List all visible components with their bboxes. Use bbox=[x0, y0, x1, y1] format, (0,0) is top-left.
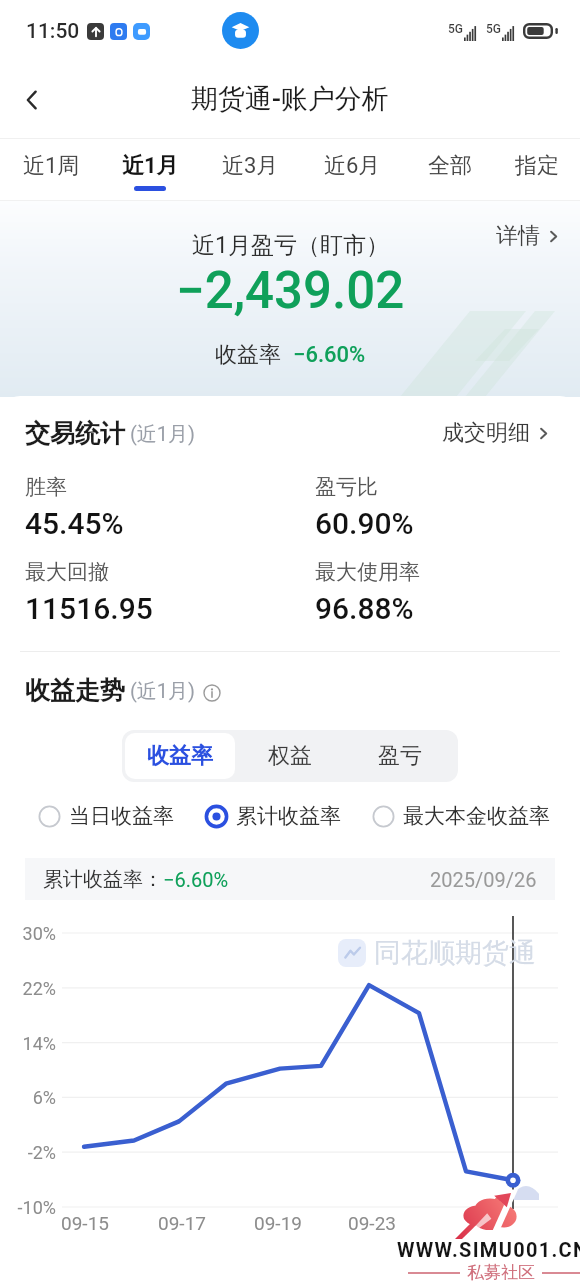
staticText: 5G bbox=[486, 22, 501, 36]
button[interactable]: 成交明细 bbox=[442, 419, 552, 449]
staticText: 09-19 bbox=[246, 1212, 310, 1234]
staticText: 私募社区 bbox=[467, 1262, 535, 1282]
staticText: 09-23 bbox=[340, 1212, 404, 1234]
staticText: 全部 bbox=[428, 152, 472, 180]
staticText: 近1月 bbox=[122, 152, 179, 180]
staticText: (近1月) bbox=[130, 422, 196, 447]
button[interactable]: 累计收益率 bbox=[205, 803, 341, 829]
staticText: 最大使用率 bbox=[315, 559, 420, 585]
staticText: 最大回撤 bbox=[25, 559, 109, 585]
button[interactable]: 最大本金收益率 bbox=[372, 803, 550, 829]
staticText: 指定 bbox=[515, 152, 559, 180]
staticText: 近6月 bbox=[324, 152, 381, 180]
staticText: 同花顺期货通 bbox=[374, 936, 536, 970]
button[interactable]: 近6月 bbox=[310, 139, 394, 200]
staticText: 收益率 bbox=[215, 341, 281, 369]
staticText: 96.88% bbox=[315, 591, 414, 626]
staticText: 6% bbox=[0, 1087, 56, 1108]
staticText: 盈亏 bbox=[378, 742, 422, 770]
button[interactable]: 权益 bbox=[235, 733, 345, 779]
staticText: 30% bbox=[0, 923, 56, 944]
staticText: 11516.95 bbox=[25, 591, 153, 626]
button[interactable]: 盈亏 bbox=[345, 733, 455, 779]
staticText: 2025/09/26 bbox=[430, 868, 537, 891]
staticText: 45.45% bbox=[25, 506, 124, 541]
staticText: 交易统计 bbox=[25, 418, 125, 449]
staticText: 累计收益率 bbox=[236, 803, 341, 829]
staticText: −6.60% bbox=[163, 868, 229, 891]
button[interactable]: 详情 bbox=[496, 222, 562, 250]
staticText: −6.60% bbox=[293, 342, 366, 368]
staticText: 近3月 bbox=[222, 152, 279, 180]
staticText: 22% bbox=[0, 978, 56, 999]
staticText: 胜率 bbox=[25, 474, 67, 500]
staticText: 09-17 bbox=[150, 1212, 214, 1234]
staticText: 期货通-账户分析 bbox=[191, 82, 389, 116]
button[interactable]: 指定 bbox=[495, 139, 579, 200]
staticText: 收益率 bbox=[147, 742, 213, 770]
staticText: 累计收益率： bbox=[43, 867, 163, 892]
staticText: 60.90% bbox=[315, 506, 414, 541]
button[interactable]: 近1周 bbox=[9, 139, 93, 200]
button[interactable]: 近3月 bbox=[208, 139, 292, 200]
staticText: 09-15 bbox=[53, 1212, 117, 1234]
staticText: 当日收益率 bbox=[69, 803, 174, 829]
staticText: 14% bbox=[0, 1033, 56, 1054]
staticText: 近1月盈亏（盯市） bbox=[192, 231, 389, 260]
staticText: (近1月) bbox=[130, 679, 196, 704]
staticText: 权益 bbox=[268, 742, 312, 770]
staticText: 5G bbox=[448, 22, 463, 36]
staticText: 最大本金收益率 bbox=[403, 803, 550, 829]
staticText: 近1周 bbox=[23, 152, 80, 180]
staticText: 详情 bbox=[496, 222, 540, 250]
button[interactable]: 近1月 bbox=[108, 139, 192, 200]
staticText: −2,439.02 bbox=[176, 261, 405, 321]
staticText: 收益走势 bbox=[25, 675, 125, 706]
button[interactable]: Back bbox=[8, 76, 56, 124]
staticText: 盈亏比 bbox=[315, 474, 378, 500]
staticText: WWW.SIMU001.CN bbox=[397, 1238, 580, 1261]
staticText: 11:50 bbox=[26, 19, 80, 44]
staticText: -2% bbox=[0, 1142, 56, 1163]
staticText: 成交明细 bbox=[442, 419, 530, 447]
button[interactable]: 收益率 bbox=[125, 733, 235, 779]
staticText: -10% bbox=[0, 1197, 56, 1218]
button[interactable]: 当日收益率 bbox=[38, 803, 174, 829]
button[interactable]: 全部 bbox=[408, 139, 492, 200]
